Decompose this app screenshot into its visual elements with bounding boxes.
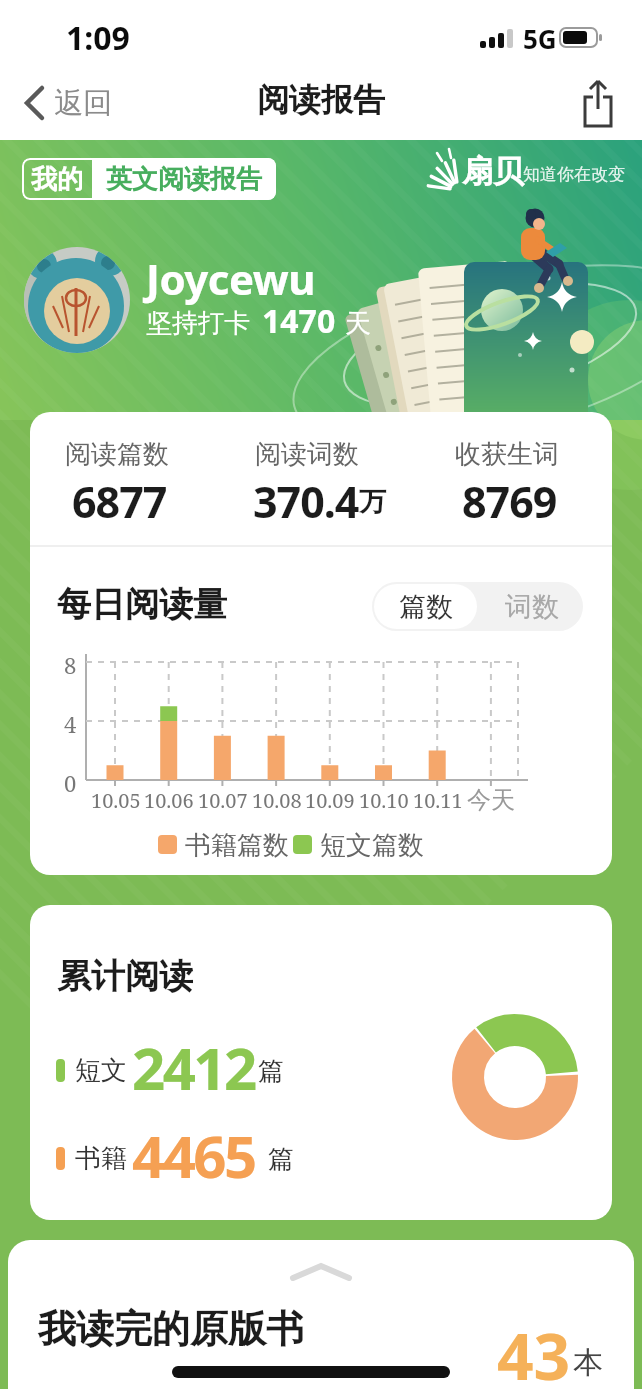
staticText: 短文篇数 [320,829,424,862]
staticText: 10.11 [413,787,463,814]
staticText: 今天 [467,785,515,815]
staticText: 370.4 [253,472,359,531]
staticText: 阅读报告 [257,80,385,120]
staticText: 8 [64,650,77,680]
staticText: 10.08 [252,787,302,814]
staticText: 我读完的原版书 [38,1305,304,1353]
staticText: 累计阅读 [57,955,193,998]
staticText: 6877 [72,472,167,531]
button[interactable]: 篇数 [374,584,477,629]
staticText: Joycewu [146,250,315,307]
button[interactable]: 我的 [22,158,276,200]
staticText: 10.06 [144,787,194,814]
button[interactable]: 返回 [22,80,132,126]
staticText: 10.07 [198,787,248,814]
staticText: 5G [523,21,557,56]
staticText: 4465 [132,1116,255,1195]
staticText: 我的 [31,163,83,196]
staticText: 10.05 [91,787,141,814]
staticText: 1470 [262,299,336,343]
staticText: 篇 [268,1143,294,1176]
staticText: 坚持打卡 [146,304,257,340]
staticText: 8769 [462,472,557,531]
staticText: 书籍篇数 [185,829,289,862]
staticText: 本 [573,1344,603,1382]
staticText: 10.10 [359,787,409,814]
staticText: 1:09 [66,16,130,60]
staticText: 43 [497,1312,571,1389]
button[interactable] [8,1240,634,1389]
staticText: 篇 [258,1055,284,1088]
staticText: 书籍 [75,1142,127,1175]
staticText: 万 [359,485,386,519]
button[interactable] [576,76,626,130]
staticText: 4 [64,709,77,739]
staticText: 英文阅读报告 [106,163,262,196]
staticText: 短文 [75,1054,127,1087]
staticText: 收获生词 [455,438,559,471]
staticText: 10.09 [305,787,355,814]
staticText: 每日阅读量 [57,583,227,626]
staticText: 2412 [132,1028,255,1107]
staticText: 天 [338,304,371,340]
staticText: 阅读篇数 [65,438,169,471]
staticText: 篇数 [399,590,453,624]
staticText: 返回 [54,85,112,122]
staticText: 扇贝 [462,152,524,191]
staticText: 词数 [505,590,559,624]
staticText: 0 [64,768,77,798]
staticText: 知道你在改变 [523,164,625,185]
button[interactable]: 词数 [480,584,583,629]
staticText: 阅读词数 [255,438,359,471]
